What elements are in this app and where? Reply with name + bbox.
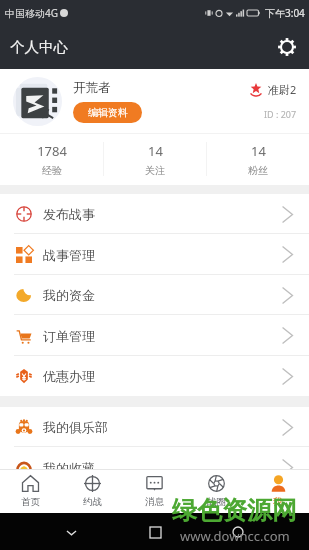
button[interactable]: 首页 bbox=[0, 469, 61, 513]
button[interactable]: 发布战事 bbox=[0, 194, 309, 234]
staticText: ID : 207 bbox=[264, 108, 297, 120]
staticText: 粉丝 bbox=[248, 164, 268, 177]
staticText: 下午3:04 bbox=[265, 6, 305, 20]
staticText: 关注 bbox=[145, 164, 165, 177]
staticText: 我的收藏 bbox=[43, 460, 95, 476]
staticText: 中国移动4G bbox=[5, 6, 58, 20]
staticText: 14 bbox=[148, 142, 163, 160]
staticText: 我的资金 bbox=[43, 287, 95, 303]
button[interactable]: 编辑资料 bbox=[73, 102, 142, 123]
staticText: 准尉2 bbox=[268, 82, 297, 97]
button[interactable]: Back bbox=[59, 520, 83, 544]
staticText: 我 bbox=[273, 496, 283, 508]
button[interactable]: 14 bbox=[104, 133, 206, 185]
staticText: 战圈 bbox=[207, 496, 226, 508]
staticText: www.downcc.com bbox=[180, 527, 290, 545]
staticText: 优惠办理 bbox=[43, 368, 95, 384]
staticText: 我的俱乐部 bbox=[43, 419, 108, 435]
button[interactable]: 订单管理 bbox=[0, 315, 309, 356]
staticText: 绿色资源网 bbox=[172, 495, 297, 526]
button[interactable]: Home bbox=[226, 520, 250, 544]
staticText: 战事管理 bbox=[43, 247, 95, 263]
button[interactable]: 战圈 bbox=[185, 469, 247, 513]
staticText: 编辑资料 bbox=[88, 106, 128, 119]
staticText: 开荒者 bbox=[73, 80, 111, 96]
staticText: 14 bbox=[251, 142, 266, 160]
staticText: 首页 bbox=[21, 496, 40, 508]
button[interactable]: 我的资金 bbox=[0, 275, 309, 315]
staticText: 1784 bbox=[37, 142, 67, 160]
button[interactable]: 我的俱乐部 bbox=[0, 407, 309, 447]
staticText: 经验 bbox=[42, 164, 62, 177]
button[interactable]: Settings bbox=[274, 34, 300, 60]
button[interactable]: 优惠办理 bbox=[0, 356, 309, 396]
staticText: 消息 bbox=[145, 496, 164, 508]
button[interactable]: Recents bbox=[143, 520, 167, 544]
button[interactable]: 1784 bbox=[0, 133, 103, 185]
button[interactable]: 我 bbox=[247, 469, 309, 513]
staticText: 订单管理 bbox=[43, 328, 95, 344]
button[interactable]: 消息 bbox=[123, 469, 185, 513]
staticText: 约战 bbox=[83, 496, 102, 508]
staticText: 个人中心 bbox=[10, 38, 68, 56]
button[interactable]: 约战 bbox=[61, 469, 123, 513]
button[interactable]: 我的收藏 bbox=[0, 447, 309, 488]
button[interactable]: 14 bbox=[207, 133, 309, 185]
button[interactable]: 战事管理 bbox=[0, 234, 309, 275]
staticText: 发布战事 bbox=[43, 206, 95, 222]
